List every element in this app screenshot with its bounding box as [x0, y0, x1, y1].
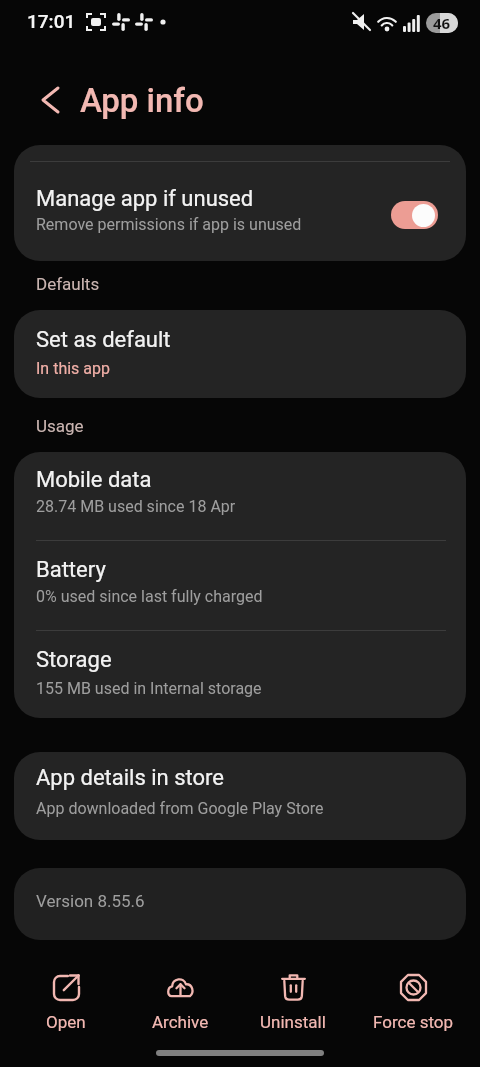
button[interactable]: Force stop — [358, 962, 468, 1042]
staticText: Version 8.55.6 — [36, 891, 145, 911]
staticText: Usage — [36, 416, 84, 436]
staticText: 0% used since last fully charged — [36, 587, 263, 606]
staticText: Uninstall — [260, 1012, 326, 1032]
staticText: 17:01 — [27, 10, 76, 32]
button[interactable] — [14, 752, 466, 840]
button[interactable] — [14, 310, 466, 398]
staticText: Open — [46, 1012, 86, 1032]
staticText: App details in store — [36, 765, 225, 791]
button[interactable] — [391, 201, 438, 229]
button[interactable] — [14, 631, 466, 718]
staticText: Battery — [36, 557, 106, 583]
staticText: 28.74 MB used since 18 Apr — [36, 497, 236, 516]
button[interactable] — [14, 452, 466, 540]
staticText: Remove permissions if app is unused — [36, 215, 302, 234]
staticText: Mobile data — [36, 467, 152, 493]
staticText: Archive — [152, 1012, 209, 1032]
button[interactable]: Open — [11, 962, 121, 1042]
staticText: Manage app if unused — [36, 186, 254, 212]
staticText: In this app — [36, 359, 110, 378]
staticText: App info — [80, 81, 204, 120]
button[interactable] — [14, 145, 466, 261]
staticText: Storage — [36, 647, 112, 673]
button[interactable]: Uninstall — [238, 962, 348, 1042]
staticText: 46 — [433, 13, 451, 33]
button[interactable]: Archive — [125, 962, 235, 1042]
button[interactable] — [28, 76, 72, 124]
button[interactable] — [14, 541, 466, 630]
staticText: Set as default — [36, 327, 171, 353]
staticText: Defaults — [36, 274, 100, 294]
staticText: App downloaded from Google Play Store — [36, 799, 324, 818]
staticText: 155 MB used in Internal storage — [36, 679, 262, 698]
staticText: Force stop — [373, 1012, 454, 1032]
